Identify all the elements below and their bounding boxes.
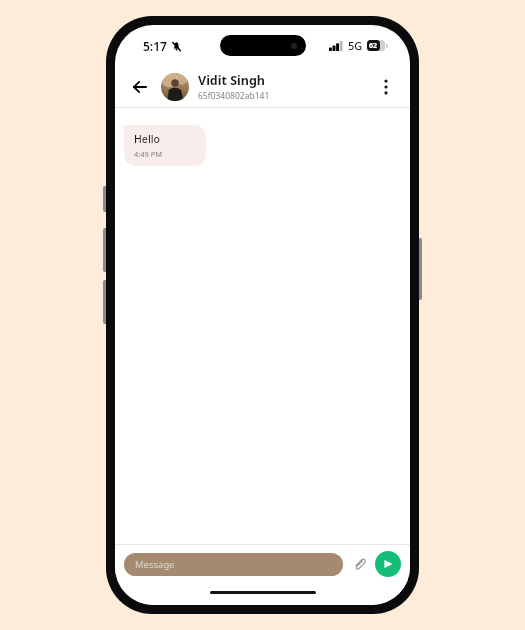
staticText: 62 xyxy=(369,41,378,51)
staticText: 65f0340802ab141 xyxy=(198,90,270,102)
button[interactable]: More options xyxy=(372,73,400,101)
staticText: 5:17 xyxy=(143,38,167,54)
staticText: Message xyxy=(135,558,175,571)
staticText: Vidit Singh xyxy=(198,72,265,89)
staticText: 5G xyxy=(348,38,363,53)
staticText: Hello xyxy=(134,132,160,146)
button[interactable]: Hello xyxy=(124,125,206,166)
button[interactable]: Profile picture xyxy=(161,73,189,101)
button[interactable]: Attach file xyxy=(349,554,369,574)
button[interactable]: Back xyxy=(125,72,155,102)
staticText: 4:49 PM xyxy=(134,149,163,159)
button[interactable]: Message xyxy=(124,553,343,576)
button[interactable]: Send xyxy=(375,551,401,577)
button[interactable]: Vidit Singh xyxy=(198,72,372,102)
